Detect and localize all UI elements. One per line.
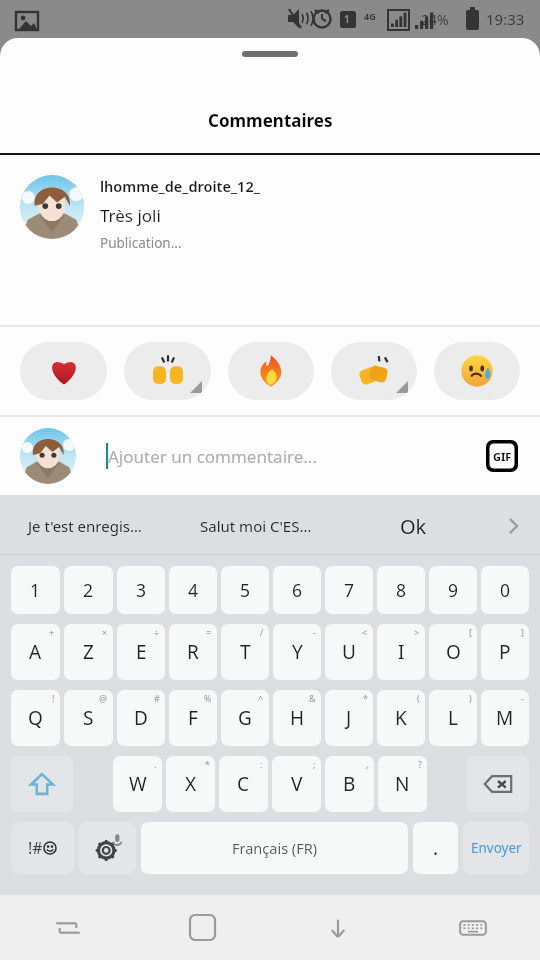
staticText: Q: [28, 705, 43, 731]
button[interactable]: J: [325, 690, 373, 746]
staticText: E: [136, 639, 147, 665]
button[interactable]: 8: [377, 566, 425, 614]
button[interactable]: Fire reaction: [228, 342, 314, 400]
button[interactable]: N: [378, 756, 427, 812]
button[interactable]: T: [221, 624, 269, 680]
staticText: A: [29, 639, 42, 665]
staticText: Z: [83, 639, 94, 665]
button[interactable]: 9: [429, 566, 477, 614]
button[interactable]: P: [481, 624, 529, 680]
staticText: !: [52, 692, 55, 704]
staticText: #: [154, 692, 160, 704]
button[interactable]: More suggestions: [486, 497, 540, 555]
button[interactable]: M: [481, 690, 529, 746]
button[interactable]: 0: [481, 566, 529, 614]
button[interactable]: Switch keyboard: [405, 895, 540, 960]
button[interactable]: Clap reaction: [331, 342, 417, 400]
staticText: ×: [102, 626, 108, 638]
button[interactable]: K: [377, 690, 425, 746]
button[interactable]: Ok: [341, 497, 486, 555]
staticText: Ok: [400, 513, 427, 540]
staticText: D: [134, 705, 148, 731]
button[interactable]: 1: [11, 566, 60, 614]
staticText: [: [469, 626, 472, 638]
button[interactable]: Ajouter un commentaire...: [76, 417, 484, 495]
staticText: 0: [500, 578, 511, 602]
button[interactable]: Home: [135, 895, 270, 960]
staticText: T: [240, 639, 251, 665]
staticText: 7: [344, 578, 355, 602]
button[interactable]: X: [166, 756, 215, 812]
staticText: Publication...: [100, 234, 182, 252]
button[interactable]: C: [219, 756, 268, 812]
button[interactable]: Je t'est enregis…: [0, 497, 170, 555]
button[interactable]: H: [273, 690, 321, 746]
staticText: @: [99, 692, 108, 704]
staticText: 19:33: [486, 9, 525, 29]
staticText: U: [342, 639, 356, 665]
staticText: .: [433, 835, 439, 861]
button[interactable]: O: [429, 624, 477, 680]
button[interactable]: Shift: [11, 756, 73, 812]
button[interactable]: 5: [221, 566, 269, 614]
staticText: :: [260, 758, 263, 770]
button[interactable]: F: [169, 690, 217, 746]
staticText: Envoyer: [471, 839, 522, 857]
button[interactable]: Heart reaction: [20, 342, 107, 400]
staticText: 9: [448, 578, 459, 602]
button[interactable]: G: [221, 690, 269, 746]
button[interactable]: B: [325, 756, 374, 812]
button[interactable]: V: [272, 756, 321, 812]
staticText: N: [395, 771, 410, 797]
button[interactable]: Crying reaction: [434, 342, 520, 400]
button[interactable]: W: [113, 756, 162, 812]
button[interactable]: 2: [64, 566, 113, 614]
staticText: 4G: [364, 10, 376, 22]
button[interactable]: Q: [11, 690, 60, 746]
staticText: O: [446, 639, 461, 665]
button[interactable]: Recents: [0, 895, 135, 960]
button[interactable]: Insert GIF: [484, 438, 520, 474]
staticText: J: [346, 705, 352, 731]
button[interactable]: D: [117, 690, 165, 746]
button[interactable]: A: [11, 624, 60, 680]
button[interactable]: Salut moi C'ES…: [170, 497, 341, 555]
staticText: !#: [28, 837, 43, 859]
button[interactable]: 7: [325, 566, 373, 614]
staticText: %: [204, 692, 212, 704]
staticText: ;: [313, 758, 316, 770]
button[interactable]: 3: [117, 566, 165, 614]
button[interactable]: Symbols and emoji: [11, 822, 74, 874]
button[interactable]: Y: [273, 624, 321, 680]
button[interactable]: lhomme_de_droite_12_: [0, 155, 540, 260]
staticText: ?: [418, 758, 422, 770]
staticText: I: [398, 639, 405, 665]
button[interactable]: Z: [64, 624, 113, 680]
staticText: Ajouter un commentaire...: [108, 445, 317, 468]
button[interactable]: U: [325, 624, 373, 680]
staticText: .: [154, 758, 157, 770]
button[interactable]: Keyboard settings: [79, 822, 136, 874]
button[interactable]: R: [169, 624, 217, 680]
staticText: lhomme_de_droite_12_: [100, 176, 260, 196]
staticText: ,: [366, 758, 369, 770]
staticText: <: [362, 626, 368, 638]
staticText: -: [313, 626, 316, 638]
button[interactable]: L: [429, 690, 477, 746]
button[interactable]: Hide keyboard: [270, 895, 405, 960]
staticText: G: [238, 705, 252, 731]
button[interactable]: S: [64, 690, 113, 746]
button[interactable]: E: [117, 624, 165, 680]
button[interactable]: Envoyer: [463, 822, 529, 874]
staticText: S: [83, 705, 94, 731]
staticText: +: [49, 626, 55, 638]
button[interactable]: Français (FR): [141, 822, 408, 874]
button[interactable]: Backspace: [467, 756, 529, 812]
button[interactable]: 4: [169, 566, 217, 614]
button[interactable]: .: [413, 822, 458, 874]
staticText: 2: [83, 578, 94, 602]
staticText: >: [414, 626, 420, 638]
button[interactable]: Raised hands reaction: [124, 342, 211, 400]
button[interactable]: I: [377, 624, 425, 680]
button[interactable]: 6: [273, 566, 321, 614]
